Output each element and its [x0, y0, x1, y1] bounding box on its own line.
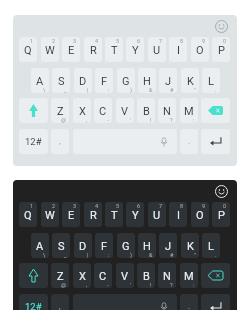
- staticText: S: [58, 75, 65, 88]
- staticText: P: [218, 209, 225, 222]
- staticText: :: [193, 282, 195, 288]
- button[interactable]: Q: [19, 202, 37, 227]
- button[interactable]: B: [137, 98, 155, 123]
- button[interactable]: Shift: [19, 263, 48, 288]
- button[interactable]: J: [159, 233, 177, 258]
- button[interactable]: Shift: [19, 98, 48, 123]
- button[interactable]: Z: [51, 98, 69, 123]
- button[interactable]: H: [138, 233, 156, 258]
- button[interactable]: Y: [126, 202, 144, 227]
- button[interactable]: W: [41, 202, 59, 227]
- button[interactable]: E: [62, 202, 80, 227]
- staticText: Y: [132, 44, 139, 57]
- button[interactable]: E: [62, 37, 80, 62]
- button[interactable]: Q: [19, 37, 37, 62]
- button[interactable]: G: [117, 233, 135, 258]
- staticText: 5: [116, 203, 120, 209]
- button[interactable]: T: [105, 37, 123, 62]
- button[interactable]: Backspace: [201, 263, 230, 288]
- staticText: :: [108, 87, 110, 93]
- staticText: 9: [202, 203, 206, 209]
- staticText: ,: [86, 282, 88, 288]
- button[interactable]: ,: [51, 129, 69, 154]
- button[interactable]: V: [116, 98, 134, 123]
- button[interactable]: W: [41, 37, 59, 62]
- button[interactable]: 12#: [19, 129, 48, 154]
- button[interactable]: A: [31, 233, 49, 258]
- button[interactable]: Z: [51, 263, 69, 288]
- button[interactable]: L: [202, 68, 220, 93]
- button[interactable]: F: [95, 233, 113, 258]
- button[interactable]: K: [181, 233, 199, 258]
- button[interactable]: P: [212, 37, 230, 62]
- button[interactable]: Emoji: [211, 181, 231, 201]
- staticText: K: [187, 240, 194, 253]
- staticText: ": [194, 252, 196, 258]
- button[interactable]: O: [191, 202, 209, 227]
- button[interactable]: F: [95, 68, 113, 93]
- button[interactable]: B: [137, 263, 155, 288]
- staticText: :: [108, 252, 110, 258]
- button[interactable]: O: [191, 37, 209, 62]
- button[interactable]: U: [148, 37, 166, 62]
- button[interactable]: D: [74, 233, 92, 258]
- button[interactable]: D: [74, 68, 92, 93]
- staticText: #: [170, 252, 174, 258]
- button[interactable]: M: [180, 263, 198, 288]
- button[interactable]: Space: [73, 294, 177, 310]
- staticText: 2: [52, 38, 56, 44]
- button[interactable]: I: [169, 202, 187, 227]
- staticText: 12#: [25, 301, 42, 310]
- staticText: ?: [170, 282, 173, 288]
- button[interactable]: G: [117, 68, 135, 93]
- button[interactable]: K: [181, 68, 199, 93]
- staticText: D: [79, 75, 87, 88]
- button[interactable]: Enter: [201, 129, 230, 154]
- button[interactable]: T: [105, 202, 123, 227]
- button[interactable]: Emoji: [211, 16, 231, 36]
- button[interactable]: U: [148, 202, 166, 227]
- button[interactable]: L: [202, 233, 220, 258]
- staticText: |: [87, 252, 89, 258]
- button[interactable]: P: [212, 202, 230, 227]
- staticText: ): [130, 87, 132, 93]
- button[interactable]: Backspace: [201, 98, 230, 123]
- staticText: L: [208, 240, 214, 253]
- staticText: 4: [95, 38, 99, 44]
- staticText: ': [130, 117, 131, 123]
- staticText: 1: [30, 38, 34, 44]
- staticText: V: [121, 105, 129, 118]
- button[interactable]: M: [180, 98, 198, 123]
- button[interactable]: I: [169, 37, 187, 62]
- button[interactable]: N: [158, 98, 176, 123]
- staticText: E: [68, 44, 75, 57]
- button[interactable]: J: [159, 68, 177, 93]
- button[interactable]: H: [138, 68, 156, 93]
- staticText: !: [150, 282, 152, 288]
- button[interactable]: 12#: [19, 294, 48, 310]
- button[interactable]: .: [180, 294, 198, 310]
- button[interactable]: Y: [126, 37, 144, 62]
- button[interactable]: A: [31, 68, 49, 93]
- button[interactable]: S: [52, 233, 70, 258]
- button[interactable]: V: [116, 263, 134, 288]
- staticText: N: [163, 270, 171, 283]
- staticText: O: [196, 44, 204, 57]
- button[interactable]: N: [158, 263, 176, 288]
- staticText: .: [215, 87, 217, 93]
- button[interactable]: C: [94, 98, 112, 123]
- staticText: 12#: [25, 136, 42, 147]
- staticText: _: [64, 87, 67, 93]
- button[interactable]: R: [84, 37, 102, 62]
- button[interactable]: ,: [51, 294, 69, 310]
- staticText: ': [130, 282, 131, 288]
- button[interactable]: C: [94, 263, 112, 288]
- button[interactable]: X: [73, 98, 91, 123]
- button[interactable]: X: [73, 263, 91, 288]
- button[interactable]: S: [52, 68, 70, 93]
- button[interactable]: R: [84, 202, 102, 227]
- button[interactable]: Space: [73, 129, 177, 154]
- button[interactable]: Enter: [201, 294, 230, 310]
- staticText: -: [107, 117, 109, 123]
